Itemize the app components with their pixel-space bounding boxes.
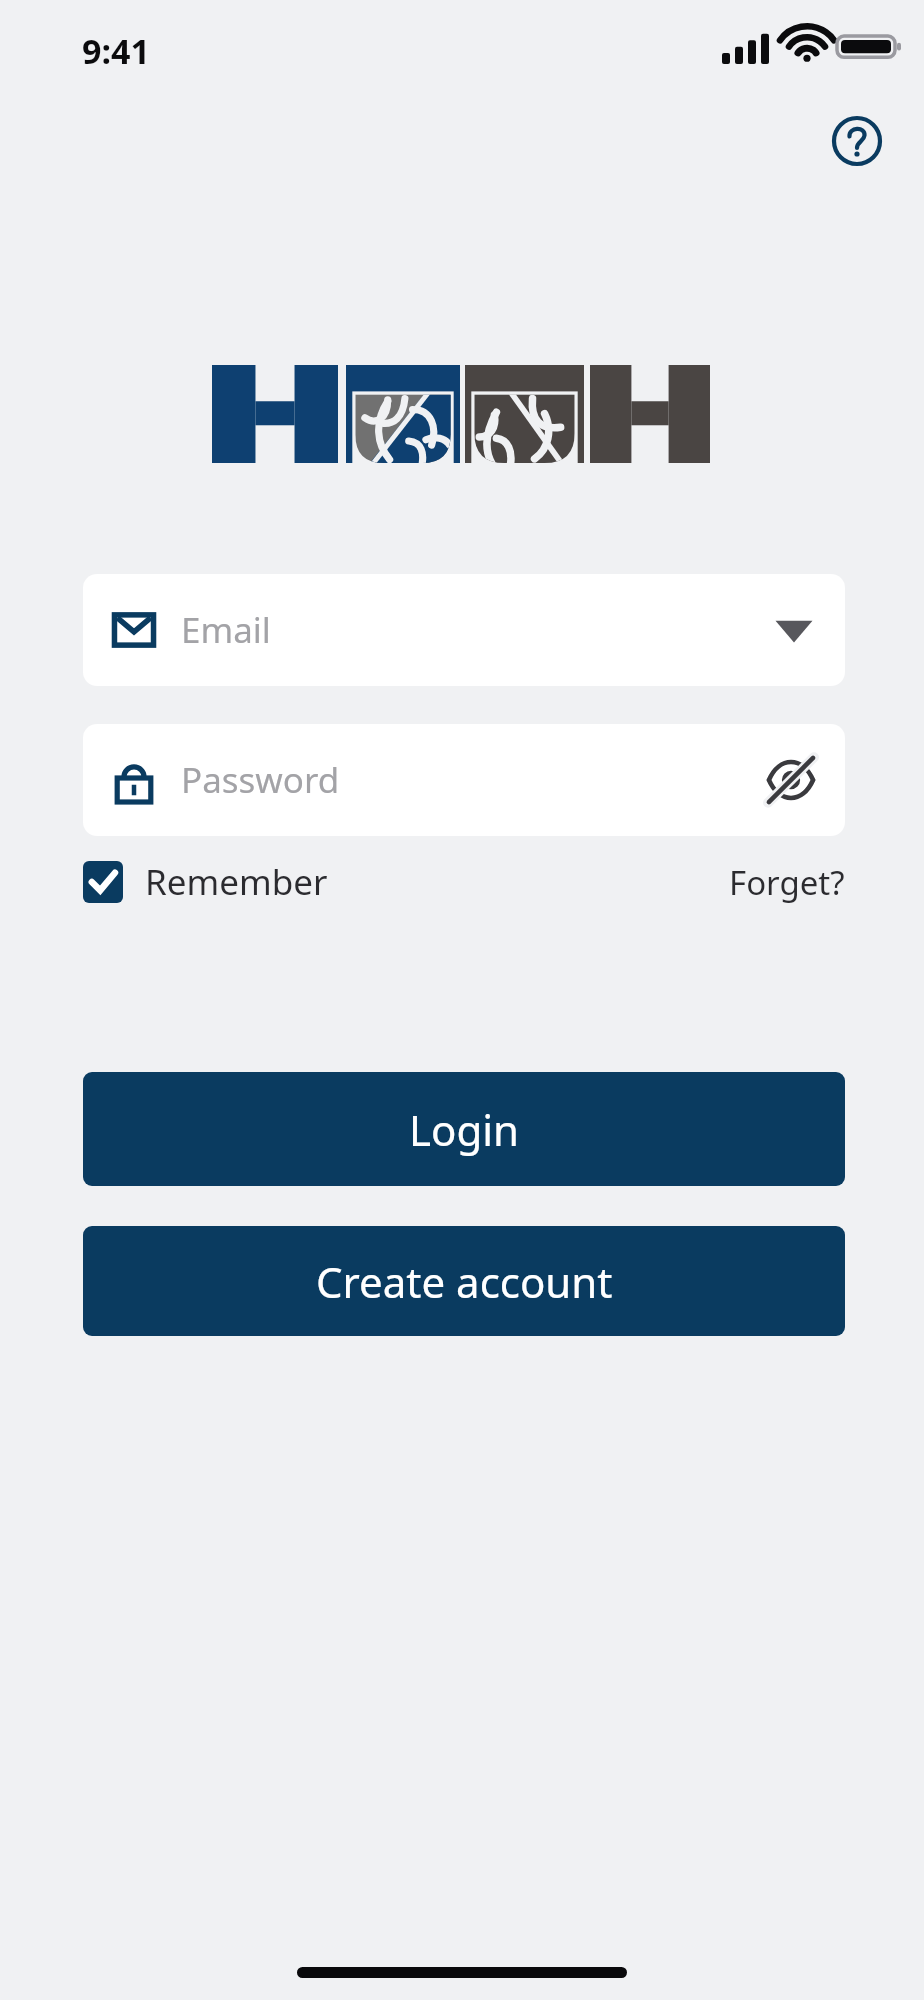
button[interactable]: Create account [83,1226,845,1336]
button[interactable]: Email [83,574,845,686]
button[interactable]: Show password [767,756,815,804]
staticText: Forget? [729,860,845,905]
button[interactable]: Forget? [729,860,845,905]
staticText: Login [409,1101,520,1158]
staticText: Create account [316,1253,613,1310]
staticText: 9:41 [82,28,150,74]
button[interactable]: Help [812,96,902,186]
button[interactable]: Remember [83,858,328,906]
button[interactable]: Password [83,724,845,836]
button[interactable]: Login [83,1072,845,1186]
staticText: Password [181,756,340,804]
staticText: Remember [145,858,328,906]
staticText: Email [181,606,271,654]
